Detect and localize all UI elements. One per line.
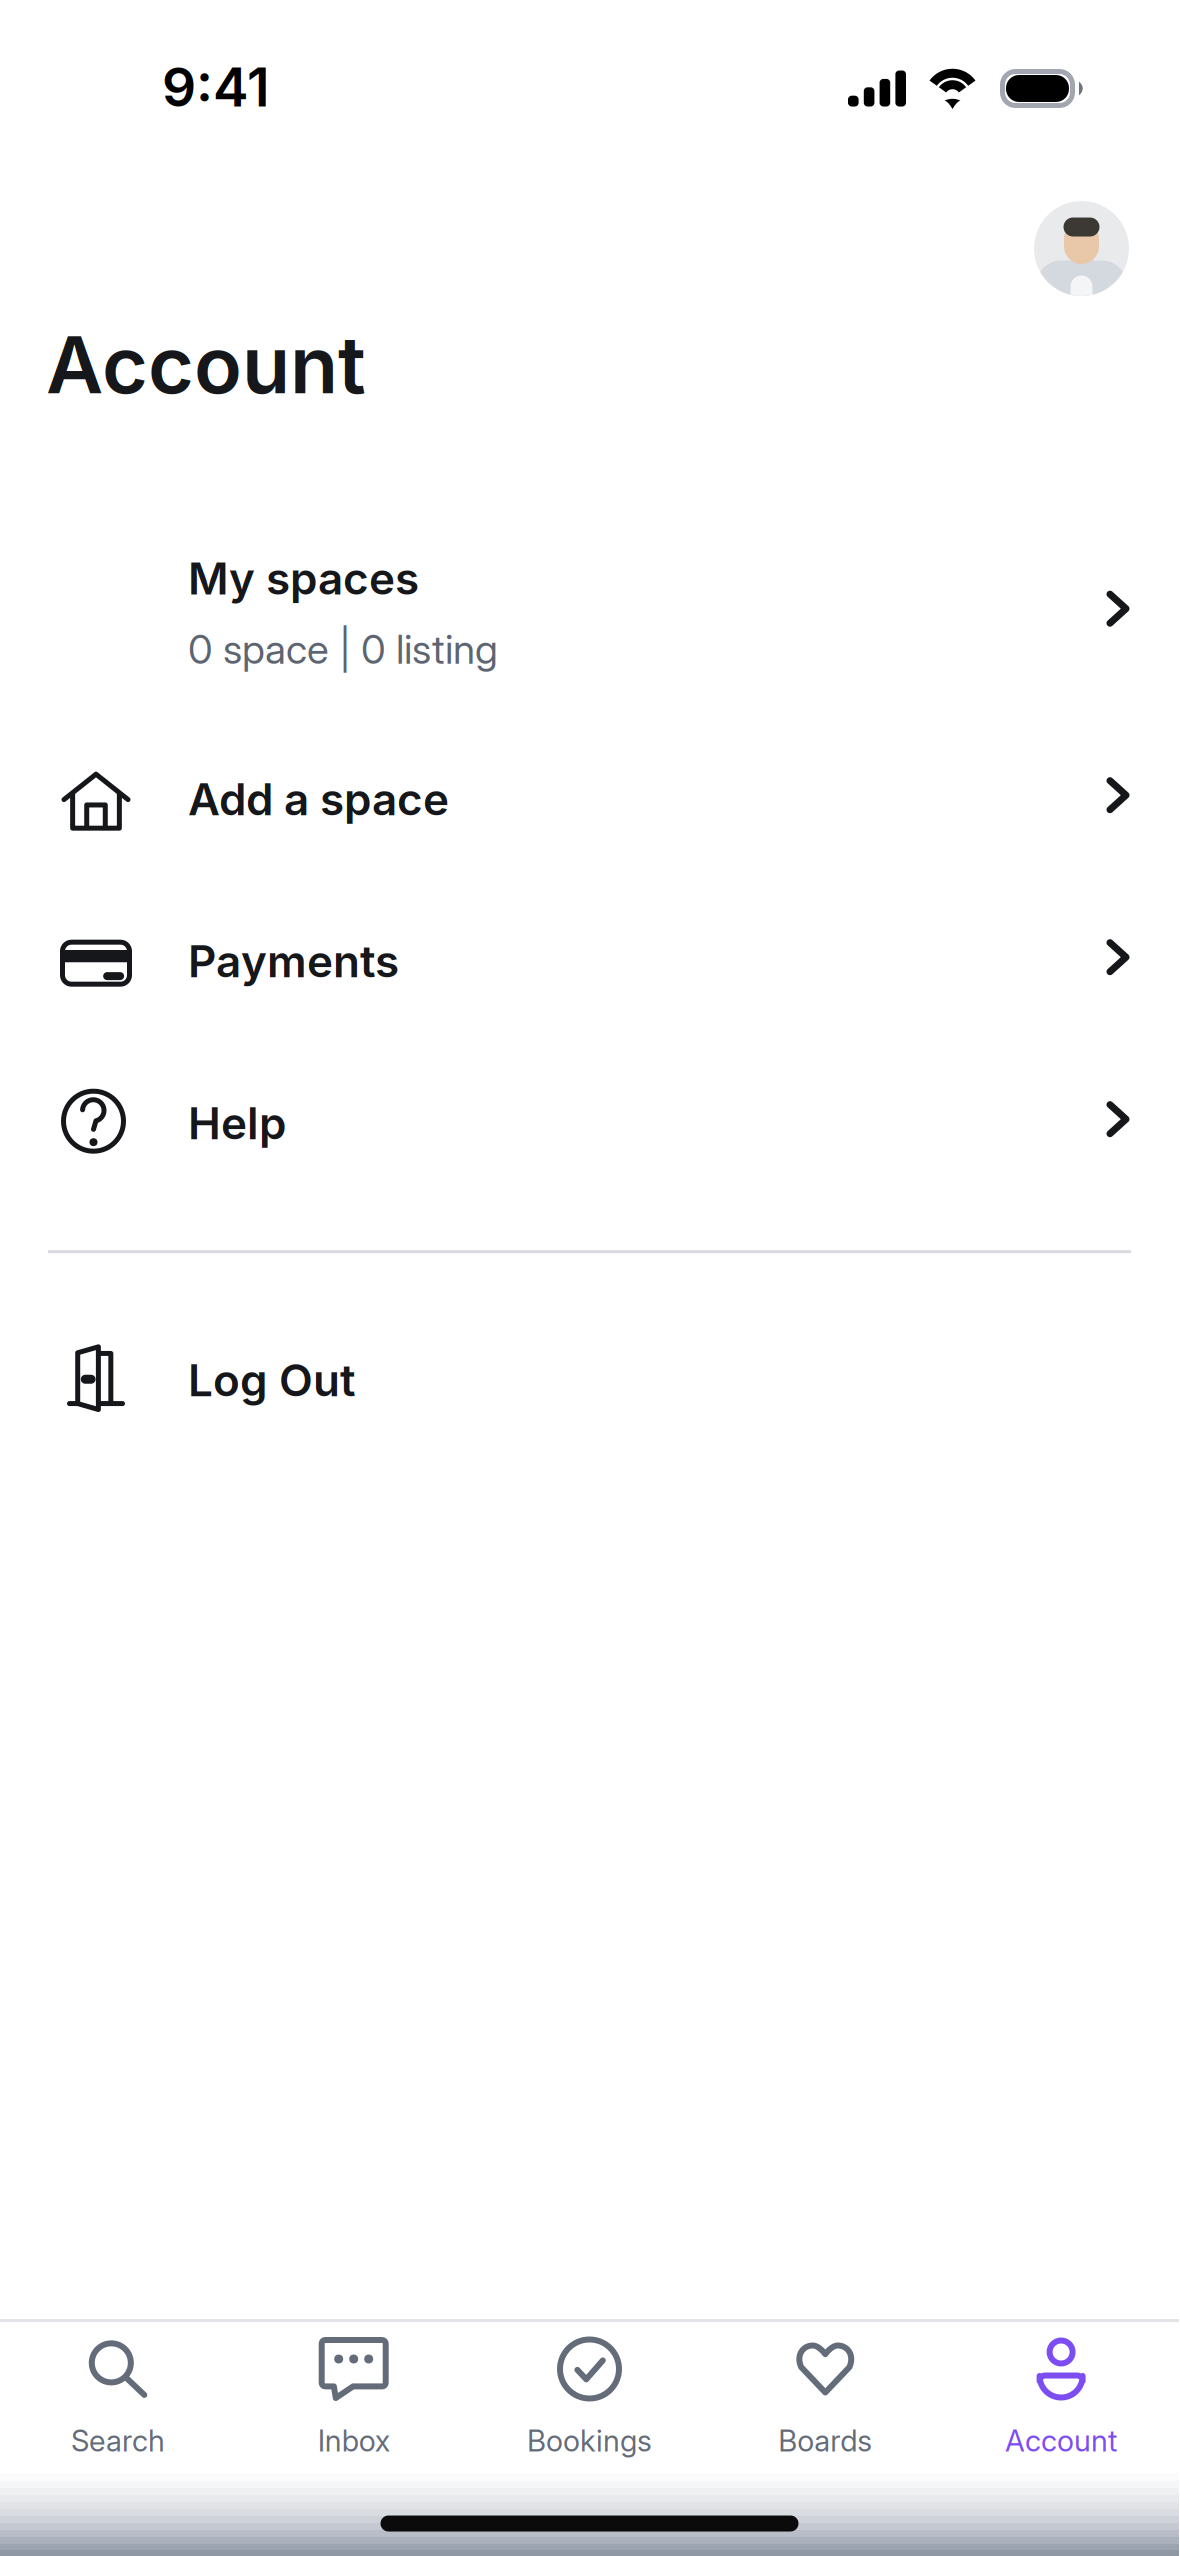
button[interactable]: Search: [0, 2322, 236, 2473]
button[interactable]: Inbox: [236, 2322, 472, 2473]
button[interactable]: My spaces: [0, 507, 1179, 718]
staticText: My spaces: [188, 552, 419, 605]
staticText: Help: [188, 1097, 286, 1150]
button[interactable]: Add a space: [0, 718, 1179, 880]
staticText: Log Out: [188, 1354, 356, 1407]
button[interactable]: Log Out: [0, 1299, 1179, 1461]
button[interactable]: Payments: [0, 880, 1179, 1042]
staticText: 0 space | 0 listing: [188, 625, 498, 673]
staticText: Account: [1005, 2423, 1117, 2458]
staticText: Bookings: [527, 2423, 652, 2458]
button[interactable]: Boards: [707, 2322, 943, 2473]
staticText: Inbox: [318, 2423, 390, 2458]
button[interactable]: Profile photo: [1034, 201, 1129, 296]
staticText: Add a space: [188, 773, 449, 826]
staticText: Account: [46, 317, 366, 412]
staticText: 9:41: [162, 55, 270, 119]
staticText: Boards: [778, 2423, 872, 2458]
button[interactable]: Bookings: [472, 2322, 707, 2473]
staticText: Search: [71, 2423, 165, 2458]
button[interactable]: Account: [943, 2322, 1179, 2473]
button[interactable]: Help: [0, 1042, 1179, 1204]
staticText: Payments: [188, 935, 399, 988]
